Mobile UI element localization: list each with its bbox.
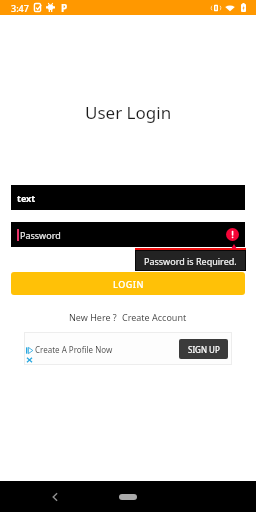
staticText: SIGN UP [188,344,220,355]
staticText: 3:47 [11,2,29,14]
button[interactable]: Create A Profile Now [24,332,232,365]
staticText: Password [20,229,61,241]
button[interactable]: text [11,185,245,210]
staticText: New Here ? [69,311,117,323]
staticText: Create A Profile Now [35,344,113,355]
button[interactable]: SIGN UP [179,339,228,359]
staticText: P [61,1,68,15]
button[interactable]: LOGIN [11,272,245,295]
button[interactable]: Create Account [122,311,187,323]
button[interactable]: Password [11,222,245,247]
button[interactable]: Home [119,494,137,500]
button[interactable]: Back [46,488,64,506]
staticText: LOGIN [113,278,144,290]
staticText: User Login [85,101,172,124]
staticText: Password is Required. [144,255,237,267]
staticText: text [17,192,36,204]
